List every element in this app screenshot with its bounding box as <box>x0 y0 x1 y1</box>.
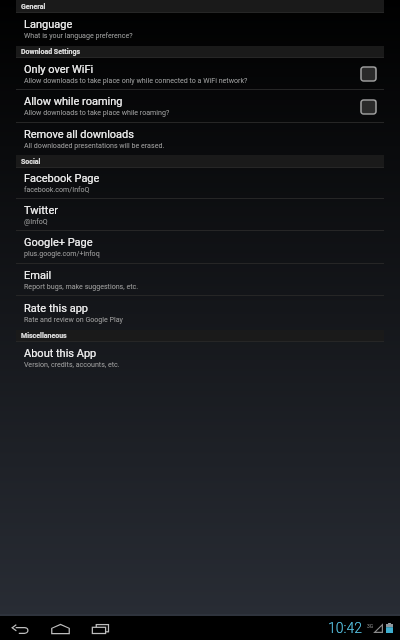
button[interactable]: Rate this app <box>0 296 400 330</box>
button[interactable]: Facebook Page <box>0 168 400 199</box>
button[interactable]: Only over WiFi <box>0 58 400 90</box>
staticText: Allow downloads to take place while roam… <box>24 108 170 116</box>
staticText: Version, credits, accounts, etc. <box>24 360 120 368</box>
staticText: Allow while roaming <box>24 95 123 108</box>
button[interactable]: Only over WiFi <box>356 62 380 86</box>
staticText: Facebook Page <box>24 172 100 185</box>
staticText: Email <box>24 269 52 282</box>
button[interactable]: Allow while roaming <box>0 90 400 123</box>
staticText: Remove all downloads <box>24 128 134 141</box>
staticText: Twitter <box>24 204 58 217</box>
staticText: General <box>21 3 46 11</box>
button[interactable]: About this App <box>0 342 400 374</box>
button[interactable]: Back <box>0 616 40 640</box>
staticText: 10:42 <box>328 620 363 636</box>
staticText: Rate this app <box>24 302 88 315</box>
staticText: Report bugs, make suggestions, etc. <box>24 282 139 290</box>
button[interactable]: Twitter <box>0 199 400 231</box>
staticText: Language <box>24 18 73 31</box>
staticText: About this App <box>24 347 97 360</box>
button[interactable]: Allow while roaming <box>356 95 380 119</box>
staticText: 3G <box>367 623 374 629</box>
staticText: Social <box>21 158 41 166</box>
button[interactable]: Google+ Page <box>0 231 400 264</box>
button[interactable]: Home <box>40 616 80 640</box>
staticText: Miscellaneous <box>21 332 67 340</box>
staticText: facebook.com/InfoQ <box>24 185 90 193</box>
staticText: All downloaded presentations will be era… <box>24 141 165 149</box>
button[interactable]: Email <box>0 264 400 296</box>
staticText: Allow downloads to take place only while… <box>24 76 248 84</box>
staticText: Rate and review on Google Play <box>24 315 123 323</box>
staticText: plus.google.com/+infoq <box>24 249 100 257</box>
staticText: @InfoQ <box>24 217 48 225</box>
button[interactable]: Status: 10:42, 3G signal, battery <box>328 620 393 636</box>
staticText: Google+ Page <box>24 236 93 249</box>
button[interactable]: Remove all downloads <box>0 123 400 155</box>
button[interactable]: Language <box>0 13 400 46</box>
staticText: Only over WiFi <box>24 63 94 76</box>
staticText: Download Settings <box>21 48 81 56</box>
button[interactable]: Recent apps <box>80 616 120 640</box>
staticText: What is your language preference? <box>24 31 133 39</box>
